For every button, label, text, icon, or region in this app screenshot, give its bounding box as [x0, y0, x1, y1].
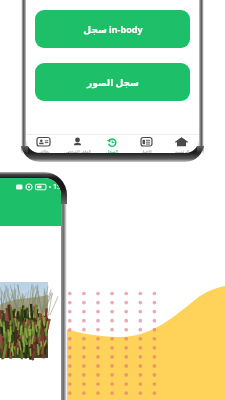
staticText: السجل — [106, 149, 118, 153]
button[interactable]: سجل الصور — [35, 63, 190, 101]
button[interactable]: السجل — [94, 135, 129, 153]
staticText: بطاقتي — [37, 149, 50, 153]
staticText: الملف الشخصي — [64, 149, 91, 153]
staticText: سجل in-body — [83, 23, 143, 35]
staticText: سجل الصور — [87, 76, 139, 88]
staticText: الرئيسية — [175, 149, 189, 153]
button[interactable]: الرئيسية — [164, 135, 199, 153]
button[interactable]: سجل in-body — [35, 10, 190, 48]
button[interactable]: الاخبار — [129, 135, 164, 153]
button[interactable]: بطاقتي — [26, 135, 60, 153]
staticText: 1:30 — [53, 182, 61, 192]
staticText: الاخبار — [141, 149, 152, 153]
button[interactable]: الملف الشخصي — [60, 135, 94, 153]
